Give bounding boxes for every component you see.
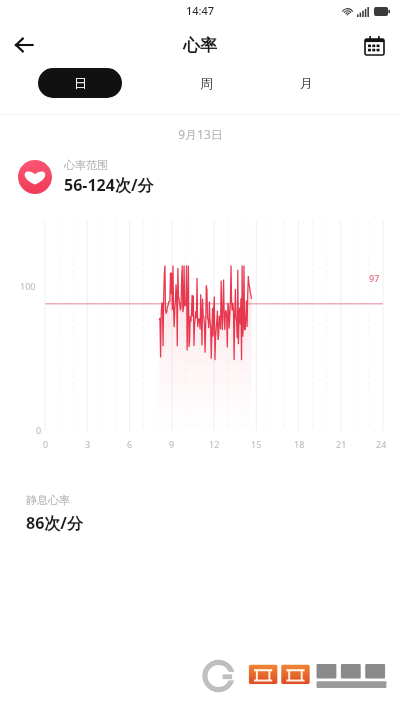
staticText: 86次/分 [26,512,83,534]
staticText: 6 [127,438,133,450]
staticText: 0 [43,438,49,450]
button[interactable]: 周 [178,68,234,98]
staticText: 月 [300,75,313,91]
staticText: 3 [85,438,91,450]
staticText: 100 [20,280,36,292]
button[interactable]: 日 [38,68,122,98]
staticText: 9月13日 [178,126,223,142]
staticText: 14:47 [186,3,215,18]
staticText: 心率 [183,35,217,56]
staticText: 9 [169,438,175,450]
button[interactable]: Calendar [356,27,392,63]
staticText: 56-124次/分 [64,174,154,196]
staticText: 心率范围 [64,158,108,172]
staticText: 97 [369,272,380,284]
button[interactable]: Back [6,27,42,63]
staticText: 日 [74,75,87,91]
staticText: 15 [251,438,262,450]
staticText: 24 [376,438,387,450]
staticText: 18 [294,438,305,450]
staticText: 21 [336,438,347,450]
button[interactable]: 月 [278,68,334,98]
staticText: 周 [200,75,213,91]
staticText: 静息心率 [26,493,70,507]
staticText: 0 [36,424,42,436]
staticText: 12 [209,438,220,450]
